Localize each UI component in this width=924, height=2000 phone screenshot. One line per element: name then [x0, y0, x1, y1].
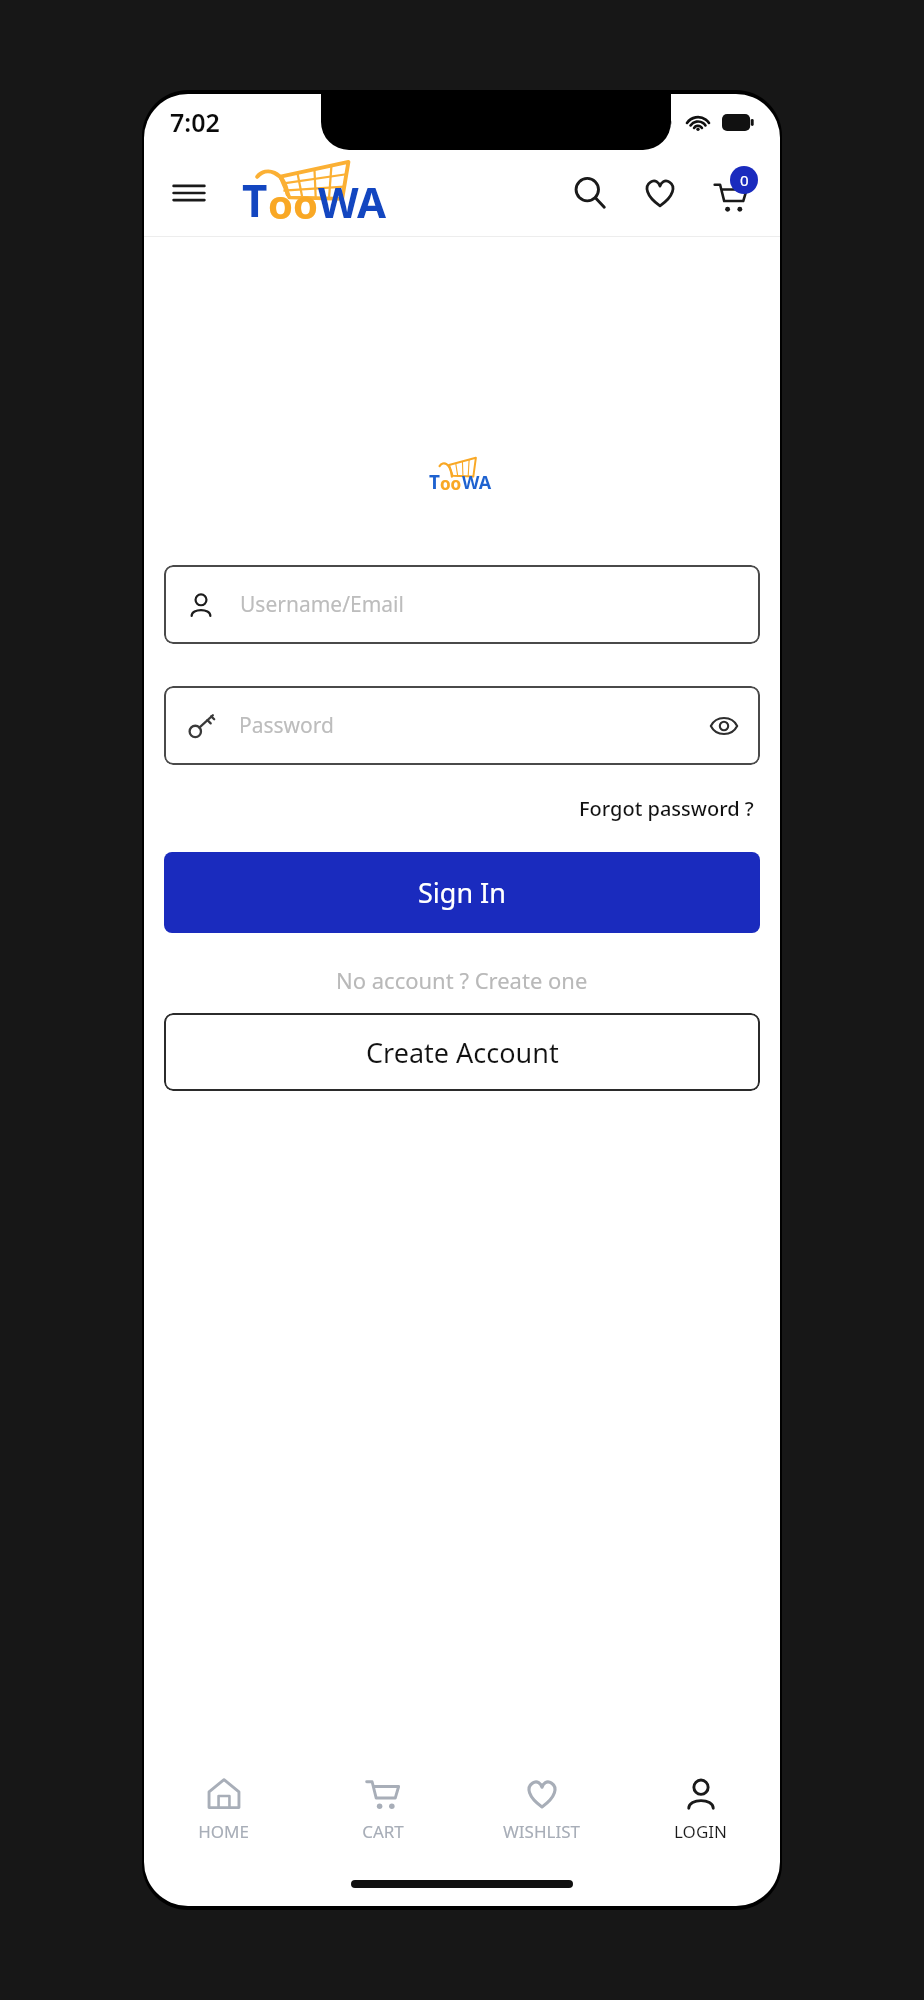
button[interactable]: T: [240, 156, 412, 230]
button[interactable]: Menu: [166, 170, 212, 216]
staticText: oo: [268, 176, 318, 230]
staticText: Create Account: [366, 1034, 559, 1071]
staticText: Password: [239, 711, 334, 740]
button[interactable]: Username/Email: [164, 565, 760, 644]
staticText: WISHLIST: [503, 1820, 580, 1843]
button[interactable]: Wishlist: [634, 167, 686, 219]
staticText: CART: [362, 1820, 404, 1843]
staticText: T: [429, 469, 440, 495]
staticText: Username/Email: [240, 590, 404, 619]
button[interactable]: HOME: [144, 1758, 303, 1862]
staticText: Forgot password ?: [579, 795, 754, 822]
button[interactable]: CART: [303, 1758, 462, 1862]
button[interactable]: Show password: [698, 700, 750, 752]
staticText: No account ? Create one: [336, 965, 588, 995]
staticText: HOME: [198, 1820, 249, 1843]
button[interactable]: No account ? Create one: [332, 961, 592, 999]
staticText: LOGIN: [674, 1820, 727, 1843]
staticText: 7:02: [170, 105, 220, 139]
button[interactable]: Cart: [704, 166, 758, 220]
staticText: 0: [740, 170, 749, 190]
staticText: T: [242, 170, 268, 230]
staticText: WA: [462, 470, 492, 495]
staticText: Sign In: [418, 874, 506, 911]
button[interactable]: Search: [564, 167, 616, 219]
button[interactable]: Sign In: [164, 852, 760, 933]
button[interactable]: WISHLIST: [462, 1758, 621, 1862]
button[interactable]: Forgot password ?: [575, 791, 758, 826]
staticText: WA: [318, 173, 386, 230]
button[interactable]: Create Account: [164, 1013, 760, 1091]
staticText: oo: [440, 472, 462, 495]
button[interactable]: Password: [164, 686, 760, 765]
button[interactable]: LOGIN: [621, 1758, 780, 1862]
